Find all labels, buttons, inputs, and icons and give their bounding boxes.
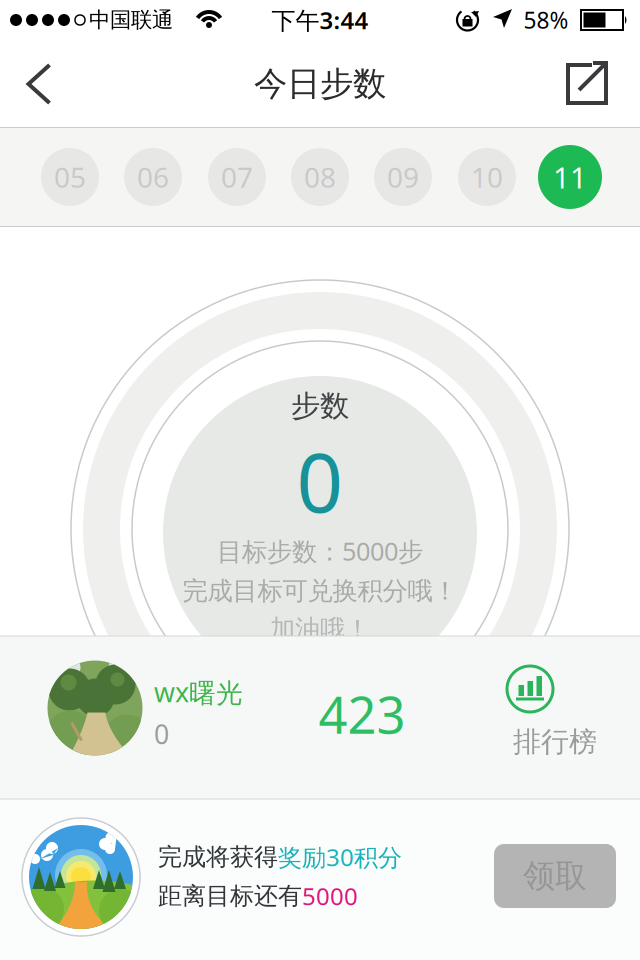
staticText: 完成目标可兑换积分哦！ bbox=[182, 575, 457, 606]
staticText: 目标步数：5000步 bbox=[217, 534, 423, 568]
staticText: 58% bbox=[523, 5, 568, 35]
staticText: 10 bbox=[471, 158, 503, 196]
button[interactable]: 06 bbox=[124, 148, 182, 206]
staticText: 11 bbox=[553, 157, 587, 196]
staticText: 5000 bbox=[302, 880, 358, 912]
staticText: 06 bbox=[137, 158, 169, 196]
staticText: 09 bbox=[387, 158, 419, 196]
staticText: 中国联通 bbox=[89, 7, 173, 33]
button[interactable]: 10 bbox=[458, 148, 516, 206]
button[interactable]: Share bbox=[566, 61, 610, 105]
staticText: 08 bbox=[304, 158, 336, 196]
staticText: 0 bbox=[296, 427, 343, 535]
button[interactable]: 07 bbox=[208, 148, 266, 206]
staticText: wx曙光 bbox=[154, 674, 243, 710]
button[interactable]: Back bbox=[17, 59, 61, 109]
staticText: 今日步数 bbox=[254, 63, 386, 104]
button[interactable]: 11 bbox=[538, 145, 602, 209]
staticText: 05 bbox=[54, 158, 86, 196]
staticText: 下午3:44 bbox=[271, 4, 368, 36]
staticText: 距离目标还有 bbox=[158, 881, 302, 911]
staticText: 步数 bbox=[291, 388, 349, 424]
staticText: 423 bbox=[318, 680, 405, 748]
button[interactable]: 排行榜 bbox=[480, 658, 630, 768]
staticText: 完成将获得 bbox=[158, 842, 278, 872]
button[interactable]: 08 bbox=[291, 148, 349, 206]
button[interactable]: 领取 bbox=[494, 844, 616, 908]
staticText: 0 bbox=[154, 716, 169, 752]
staticText: 排行榜 bbox=[513, 725, 597, 759]
button[interactable]: 05 bbox=[41, 148, 99, 206]
button[interactable]: 09 bbox=[374, 148, 432, 206]
staticText: 领取 bbox=[523, 856, 587, 896]
staticText: 加油哦！ bbox=[270, 613, 370, 644]
staticText: 07 bbox=[221, 158, 253, 196]
staticText: 奖励30积分 bbox=[278, 841, 402, 873]
